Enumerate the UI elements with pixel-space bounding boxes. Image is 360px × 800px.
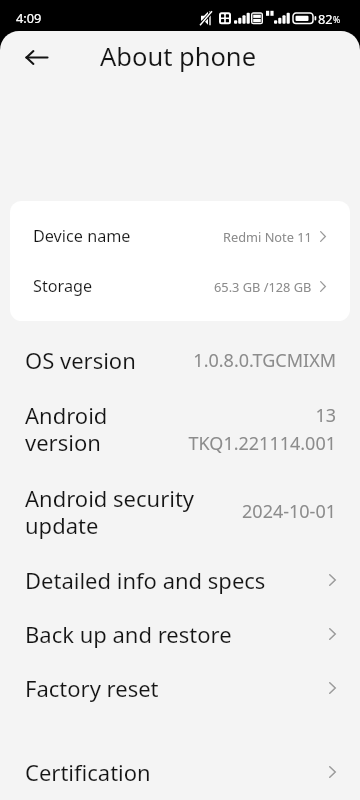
staticText: Back up and restore (25, 619, 232, 649)
button[interactable]: Factory reset (0, 661, 360, 715)
staticText: 1.0.8.0.TGCMIXM (193, 348, 336, 373)
staticText: Android version (25, 400, 108, 457)
staticText: 82 (318, 10, 333, 27)
staticText: Device name (33, 225, 131, 247)
staticText: 2024-10-01 (242, 499, 336, 524)
staticText: Certification (25, 757, 151, 787)
button[interactable]: Device name (10, 211, 350, 261)
button[interactable]: Storage (10, 261, 350, 311)
button[interactable]: Android version (0, 387, 360, 470)
staticText: Redmi Note 11 (223, 228, 312, 245)
staticText: OS version (25, 345, 136, 375)
button[interactable]: OS version (0, 333, 360, 387)
staticText: About phone (100, 39, 257, 74)
staticText: 13 TKQ1.221114.001 (188, 403, 336, 455)
staticText: Storage (33, 275, 93, 297)
staticText: Android security update (25, 483, 195, 540)
button[interactable]: Detailed info and specs (0, 553, 360, 607)
button[interactable]: Certification (0, 745, 360, 799)
staticText: % (333, 14, 341, 26)
button[interactable]: Back up and restore (0, 607, 360, 661)
button[interactable]: Android security update (0, 470, 360, 553)
staticText: 65.3 GB /128 GB (214, 278, 312, 295)
staticText: Factory reset (25, 673, 159, 703)
button[interactable]: Back (14, 34, 59, 79)
staticText: 4:09 (16, 9, 42, 26)
staticText: Detailed info and specs (25, 565, 266, 595)
